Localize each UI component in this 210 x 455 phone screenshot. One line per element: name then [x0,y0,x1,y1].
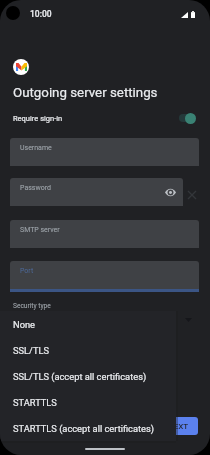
staticText: Password [20,184,51,192]
staticText: Port [20,267,34,275]
button[interactable]: SSL/TLS [0,337,176,363]
staticText: NEXT [168,422,189,431]
button[interactable]: SMTP server [10,220,199,248]
staticText: Outgoing server settings [13,85,158,101]
staticText: None [13,319,35,330]
button[interactable]: STARTTLS [0,389,176,415]
staticText: SSL/TLS [13,345,49,356]
staticText: SSL/TLS (accept all certificates) [13,371,147,382]
button[interactable]: Username [10,138,199,166]
staticText: SMTP server [20,226,60,234]
staticText: Username [20,144,52,152]
button[interactable]: STARTTLS (accept all certificates) [0,415,176,441]
button[interactable]: Require sign-in [0,108,210,128]
staticText: STARTTLS [13,397,57,408]
button[interactable]: Password [10,178,183,206]
other: Expand security type [185,318,192,322]
other: Clear [187,190,197,200]
staticText: Security type [13,302,51,310]
other: Show password [165,189,176,196]
staticText: Require sign-in [13,114,63,123]
button[interactable]: NEXT [159,417,198,435]
staticText: STARTTLS (accept all certificates) [13,423,155,434]
button[interactable]: Port [10,261,199,289]
staticText: 10:00 [30,9,52,19]
button[interactable]: SSL/TLS (accept all certificates) [0,363,176,389]
button[interactable]: None [0,311,176,337]
